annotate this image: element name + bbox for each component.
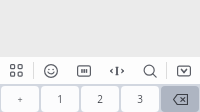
button[interactable]: 1: [41, 86, 79, 112]
button[interactable]: Emoji: [34, 57, 67, 84]
button[interactable]: +: [1, 86, 39, 112]
staticText: 2: [97, 92, 103, 106]
button[interactable]: Keyboard modes: [0, 57, 33, 84]
button[interactable]: 2: [81, 86, 119, 112]
button[interactable]: Hide keyboard: [167, 57, 200, 84]
button[interactable]: Stickers: [67, 57, 100, 84]
staticText: 3: [137, 92, 143, 106]
button[interactable]: Text editing: [100, 57, 133, 84]
button[interactable]: Search: [133, 57, 166, 84]
button[interactable]: 3: [121, 86, 159, 112]
staticText: 1: [57, 92, 63, 106]
button[interactable]: Backspace: [161, 86, 199, 112]
staticText: +: [17, 93, 23, 105]
